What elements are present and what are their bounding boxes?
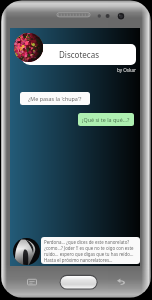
button[interactable]: Perdona... ¿que dices de este nanorelato… <box>41 237 140 264</box>
staticText: Discotecas <box>59 49 99 60</box>
staticText: ruido... espero que digas que tu has reí… <box>44 251 134 257</box>
button[interactable]: Back <box>113 275 129 289</box>
staticText: Perdona... ¿que dices de este nanorelato… <box>44 239 130 245</box>
staticText: by Oskar <box>117 67 136 73</box>
button[interactable]: Menu <box>24 275 40 289</box>
button[interactable]: Home <box>58 274 98 290</box>
button[interactable]: ¡Qué si te la qué...? <box>78 113 134 126</box>
staticText: ¿como...? Joder !! es que no te oigo con… <box>44 245 134 251</box>
button[interactable]: Discotecas <box>21 44 136 65</box>
staticText: ¿Me pasas la 'chupa'? <box>28 95 82 102</box>
staticText: Hasta el próximo nanorelatores... <box>44 257 113 263</box>
staticText: ¡Qué si te la qué...? <box>82 116 130 123</box>
button[interactable]: ¿Me pasas la 'chupa'? <box>20 92 90 105</box>
button[interactable]: by Oskar <box>117 67 136 73</box>
